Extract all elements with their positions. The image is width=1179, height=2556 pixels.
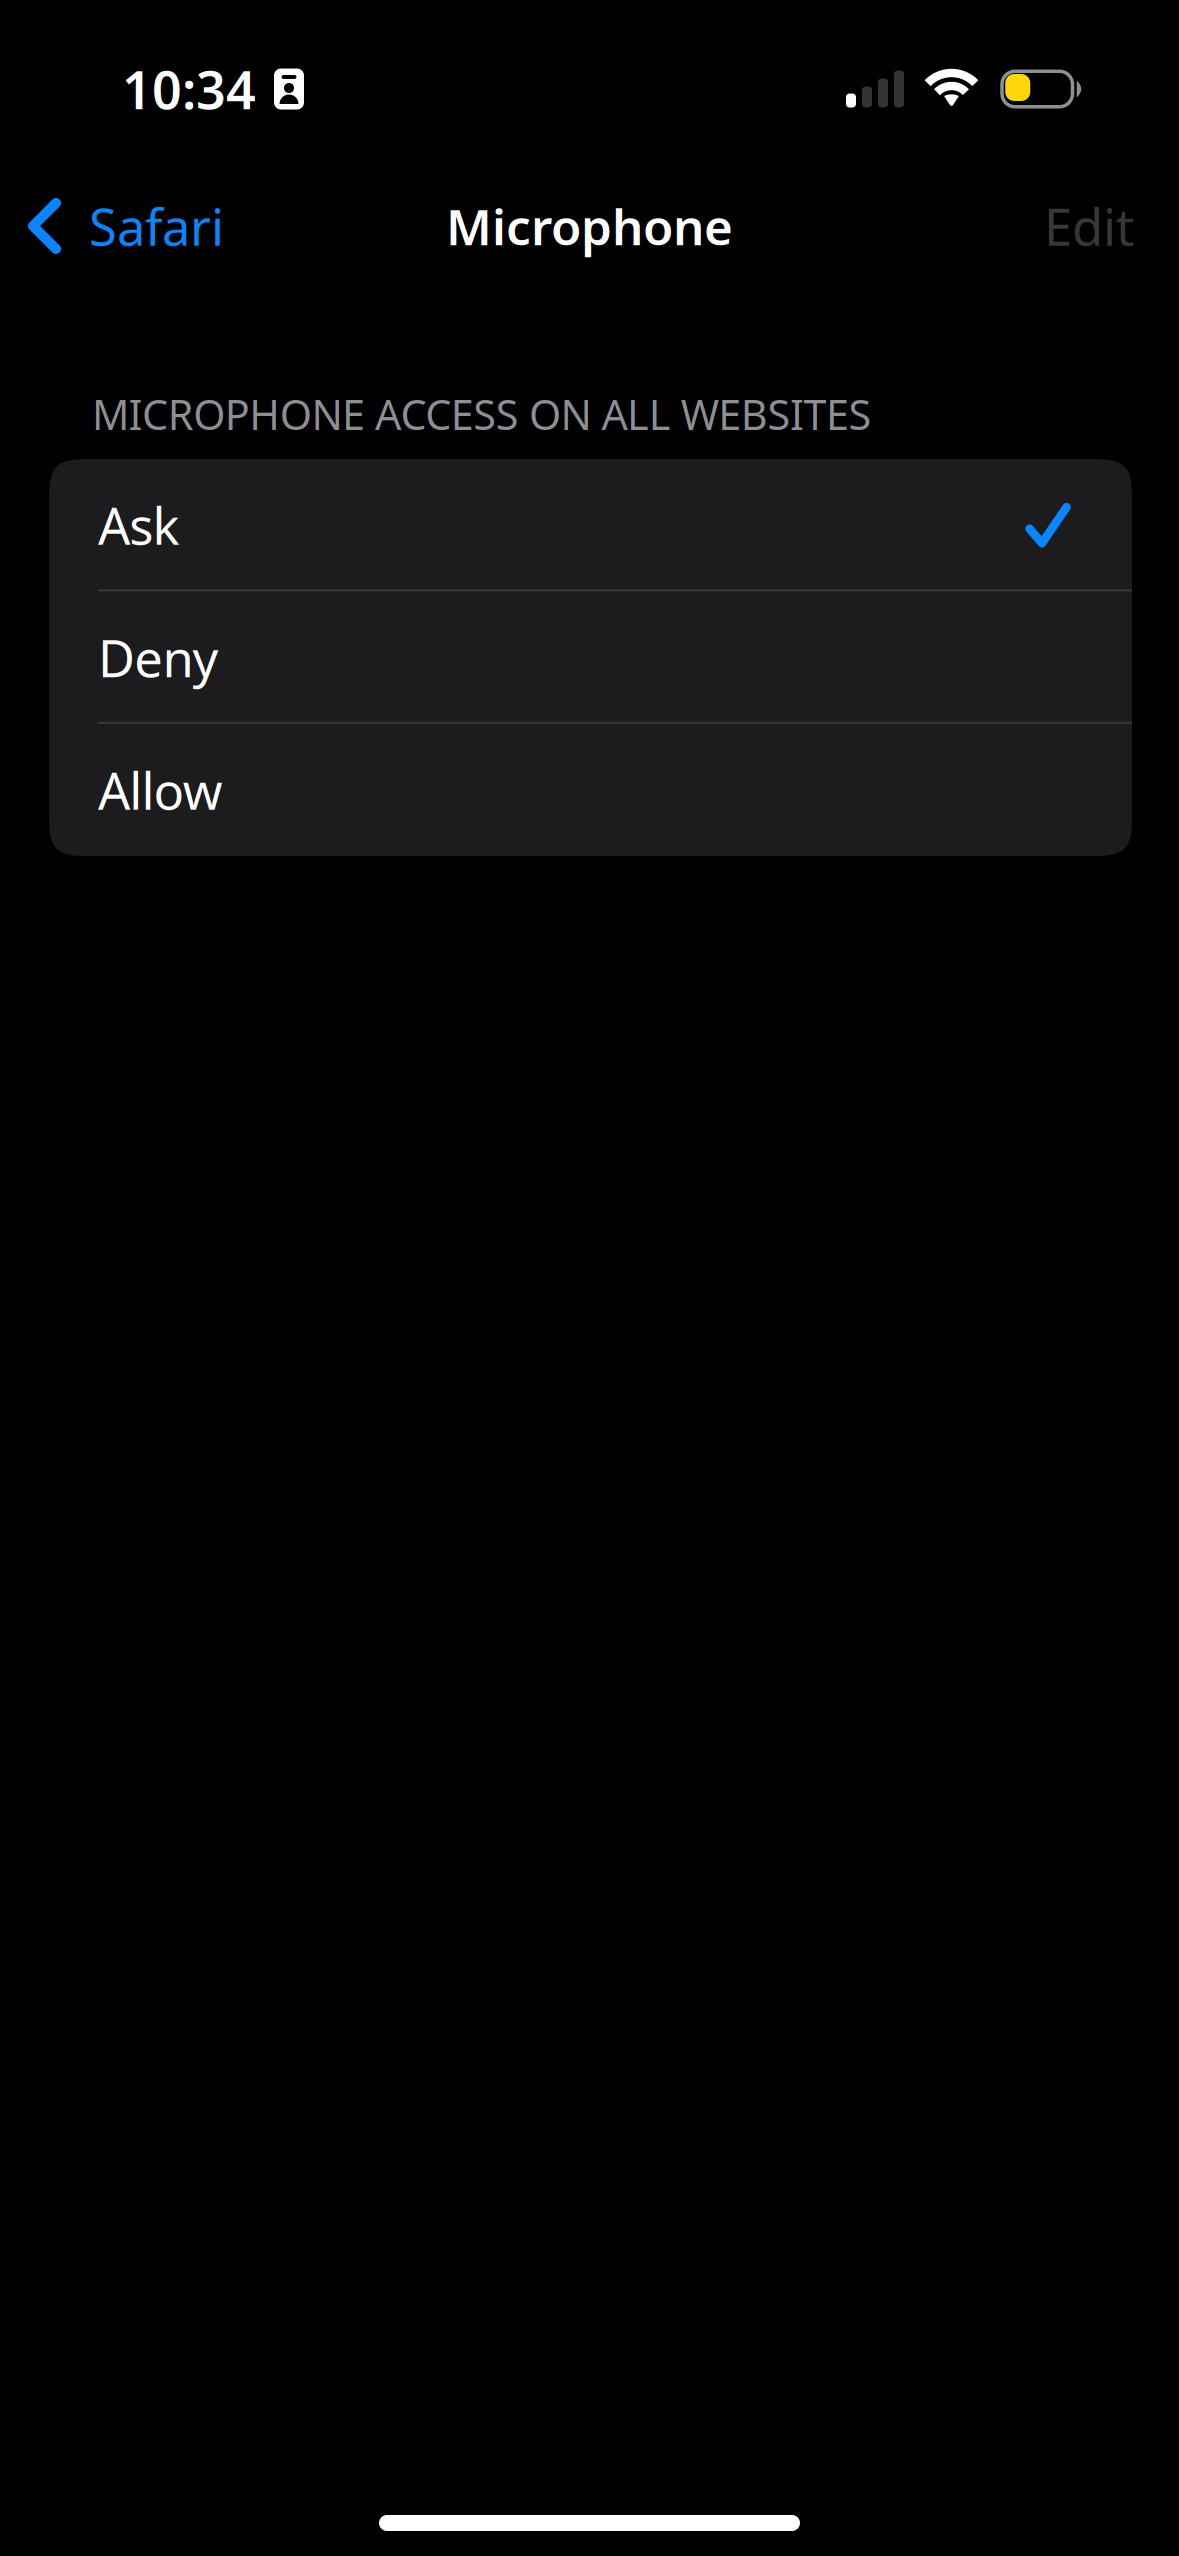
staticText: Allow (98, 756, 223, 824)
staticText: Deny (98, 624, 219, 691)
button[interactable]: Back to Safari (28, 192, 234, 260)
staticText: MICROPHONE ACCESS ON ALL WEBSITES (92, 387, 872, 441)
staticText: Safari (89, 192, 224, 260)
staticText: Edit (1044, 192, 1134, 260)
button[interactable]: Allow (49, 724, 1132, 856)
staticText: Microphone (446, 193, 733, 259)
button[interactable]: Deny (49, 591, 1132, 724)
button[interactable]: Ask (49, 459, 1132, 591)
button[interactable]: Edit (1020, 192, 1179, 260)
staticText: 10:34 (122, 54, 256, 124)
staticText: Ask (98, 492, 179, 559)
